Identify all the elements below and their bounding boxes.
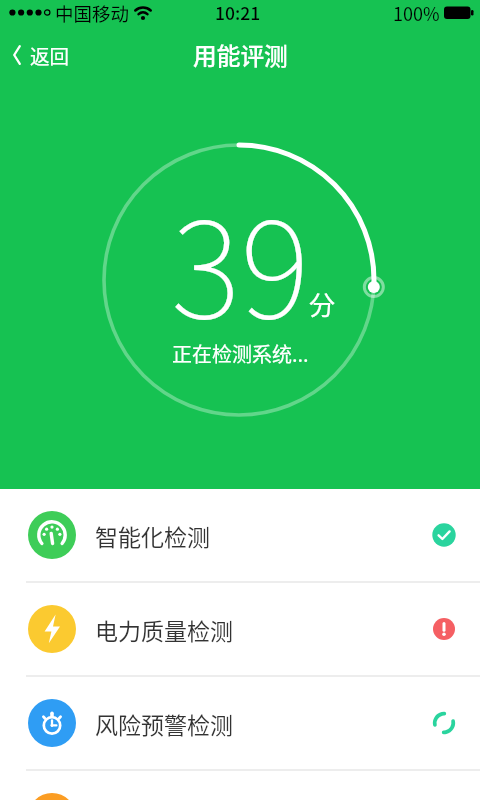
staticText: 10:21 (215, 0, 261, 25)
staticText: 39 (171, 164, 310, 357)
staticText: 用能评测 (193, 38, 288, 72)
staticText: 电力质量检测 (95, 613, 233, 646)
button[interactable]: 风险预警检测 (0, 677, 480, 769)
button[interactable]: 电力质量检测 (0, 583, 480, 675)
staticText: 智能化检测 (95, 519, 210, 552)
staticText: 正在检测系统... (172, 339, 309, 368)
staticText: 中国移动 (55, 0, 130, 25)
button[interactable]: 智能化检测 (0, 489, 480, 581)
button[interactable]: 返回 (12, 41, 70, 69)
staticText: 分 (309, 285, 336, 323)
staticText: 返回 (30, 41, 70, 69)
staticText: 风险预警检测 (95, 707, 233, 740)
button[interactable]: 用电安全检测 (0, 771, 480, 800)
staticText: 100% (393, 0, 440, 25)
